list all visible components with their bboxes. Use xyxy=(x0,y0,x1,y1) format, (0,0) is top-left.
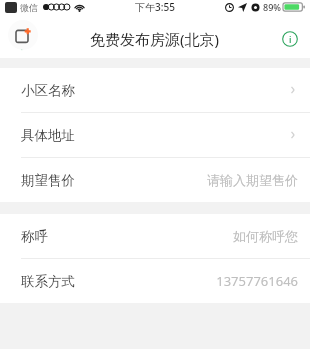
staticText: 89% xyxy=(263,1,281,13)
button[interactable]: Back xyxy=(6,24,36,54)
staticText: 13757761646 xyxy=(216,272,298,290)
staticText: 联系方式 xyxy=(21,273,75,290)
staticText: 小区名称 xyxy=(21,82,75,99)
staticText: 下午3:55 xyxy=(135,0,175,14)
staticText: 请输入期望售价 xyxy=(207,172,298,188)
button[interactable]: Info xyxy=(278,27,302,51)
button[interactable]: Open in app xyxy=(8,20,38,50)
staticText: 称呼 xyxy=(21,228,48,245)
staticText: 微信 xyxy=(20,2,38,13)
staticText: 免费发布房源(北京) xyxy=(90,29,220,49)
staticText: i xyxy=(289,33,292,45)
staticText: 如何称呼您 xyxy=(233,228,298,244)
button[interactable]: 联系方式 xyxy=(0,259,310,303)
staticText: 具体地址 xyxy=(21,127,75,144)
button[interactable]: 称呼 xyxy=(0,214,310,258)
button[interactable]: 期望售价 xyxy=(0,158,310,202)
button[interactable]: 具体地址 xyxy=(0,113,310,157)
staticText: 期望售价 xyxy=(21,172,75,189)
button[interactable]: 小区名称 xyxy=(0,68,310,112)
